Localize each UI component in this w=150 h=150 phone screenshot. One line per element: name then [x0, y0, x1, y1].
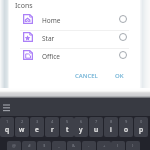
button[interactable]: 9 — [119, 117, 133, 137]
button[interactable]: @ — [7, 141, 21, 150]
button[interactable]: Home — [9, 11, 140, 29]
staticText: # — [28, 143, 31, 149]
staticText: y — [79, 125, 83, 134]
staticText: 2 — [21, 119, 24, 124]
button[interactable]: OK — [112, 69, 127, 83]
staticText: ( — [117, 143, 119, 149]
staticText: t — [66, 125, 69, 134]
button[interactable]: 2 — [15, 117, 29, 137]
button[interactable]: _ — [52, 141, 66, 150]
staticText: _ — [58, 143, 60, 149]
staticText: 7 — [95, 119, 98, 124]
staticText: $ — [43, 143, 46, 149]
button[interactable]: & — [67, 141, 81, 150]
staticText: CANCEL — [75, 72, 98, 80]
staticText: 6 — [80, 119, 83, 124]
button[interactable]: Star — [9, 29, 140, 47]
staticText: Icons — [15, 1, 33, 11]
button[interactable]: ( — [111, 141, 125, 150]
staticText: 9 — [125, 119, 128, 124]
button[interactable]: - — [82, 141, 96, 150]
staticText: 8 — [110, 119, 113, 124]
button[interactable]: 8 — [104, 117, 118, 137]
staticText: u — [94, 125, 99, 134]
button[interactable]: ) — [126, 141, 140, 150]
button[interactable]: 5 — [60, 117, 74, 137]
staticText: @ — [12, 143, 16, 149]
staticText: ) — [132, 143, 134, 149]
staticText: 5 — [66, 119, 69, 124]
staticText: e — [35, 125, 39, 134]
staticText: o — [124, 125, 129, 134]
button[interactable]: CANCEL — [72, 69, 101, 83]
staticText: & — [72, 143, 76, 149]
button[interactable]: 0 — [134, 117, 148, 137]
staticText: 1 — [6, 119, 9, 124]
staticText: Office — [42, 52, 61, 61]
button[interactable]: # — [22, 141, 36, 150]
staticText: Star — [42, 34, 55, 43]
staticText: + — [103, 143, 106, 149]
staticText: 4 — [51, 119, 54, 124]
button[interactable]: Keyboard menu — [3, 104, 10, 111]
button[interactable]: 4 — [45, 117, 59, 137]
staticText: 3 — [36, 119, 39, 124]
button[interactable]: Office — [9, 47, 140, 65]
staticText: 0 — [140, 119, 143, 124]
button[interactable]: $ — [37, 141, 51, 150]
button[interactable]: 6 — [74, 117, 88, 137]
button[interactable]: + — [97, 141, 111, 150]
staticText: Home — [42, 16, 61, 25]
staticText: q — [5, 125, 10, 134]
staticText: w — [19, 125, 25, 134]
button[interactable]: 7 — [89, 117, 103, 137]
staticText: i — [110, 125, 112, 134]
button[interactable]: 1 — [0, 117, 14, 137]
staticText: p — [139, 125, 144, 134]
staticText: OK — [115, 72, 124, 80]
staticText: r — [51, 125, 54, 134]
button[interactable]: 3 — [30, 117, 44, 137]
staticText: - — [88, 143, 90, 149]
